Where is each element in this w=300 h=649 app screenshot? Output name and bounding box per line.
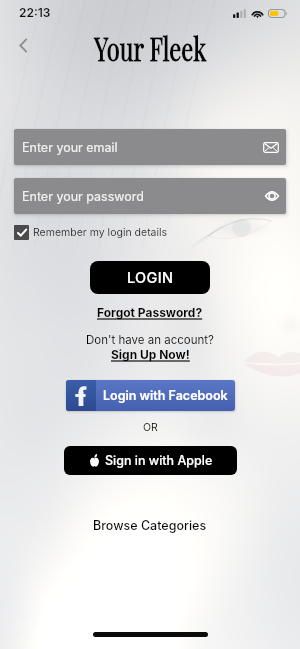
staticText: OR — [143, 421, 158, 434]
staticText: 22:13 — [19, 5, 51, 20]
button[interactable]: Enter your password — [14, 178, 286, 214]
staticText: Login with Facebook — [103, 388, 228, 403]
staticText: Your Fleek — [94, 27, 207, 68]
staticText: Remember my login details — [33, 226, 168, 239]
staticText: Don't have an account? — [86, 333, 214, 347]
button[interactable]: Sign in with Apple — [64, 446, 237, 475]
other: Show password — [265, 191, 279, 201]
button[interactable]: LOGIN — [90, 261, 210, 294]
button[interactable]: Back — [6, 28, 40, 62]
staticText: Sign in with Apple — [105, 453, 213, 468]
staticText: Enter your email — [22, 140, 118, 155]
button[interactable]: Remember my login details — [14, 224, 168, 241]
button[interactable]: Login with Facebook — [66, 380, 235, 411]
button[interactable]: Enter your email — [14, 129, 286, 165]
button[interactable]: Forgot Password? — [93, 303, 207, 322]
button[interactable]: Browse Categories — [87, 515, 213, 536]
other: Email — [263, 142, 279, 153]
staticText: Enter your password — [22, 189, 144, 204]
staticText: LOGIN — [127, 269, 174, 287]
button[interactable]: Sign Up Now! — [107, 345, 194, 364]
